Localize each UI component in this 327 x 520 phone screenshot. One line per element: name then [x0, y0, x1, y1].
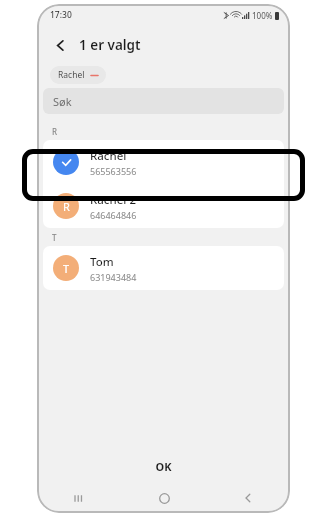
- staticText: Rachel 2: [90, 192, 136, 208]
- button[interactable]: R: [43, 184, 284, 228]
- button[interactable]: Back: [49, 34, 71, 56]
- button[interactable]: Home: [122, 483, 206, 513]
- staticText: Rachel: [90, 148, 127, 164]
- button[interactable]: Recents: [37, 483, 122, 513]
- staticText: T: [63, 261, 70, 276]
- button[interactable]: Back: [206, 483, 290, 513]
- staticText: 565563556: [90, 165, 137, 177]
- button[interactable]: Søk: [43, 88, 284, 114]
- staticText: Søk: [53, 94, 72, 109]
- staticText: 17:30: [50, 9, 72, 21]
- button[interactable]: T: [43, 246, 284, 290]
- staticText: T: [52, 232, 57, 243]
- staticText: R: [52, 126, 58, 137]
- staticText: 646464846: [90, 209, 137, 221]
- button[interactable]: Rachel: [50, 66, 106, 84]
- button[interactable]: Rachel: [43, 140, 284, 184]
- staticText: R: [63, 199, 70, 214]
- staticText: Tom: [90, 254, 114, 270]
- staticText: 631943484: [90, 271, 137, 283]
- staticText: 100%: [252, 10, 273, 21]
- button[interactable]: OK: [37, 449, 290, 483]
- staticText: 1 er valgt: [79, 36, 141, 54]
- staticText: Rachel: [58, 69, 85, 81]
- staticText: OK: [155, 459, 172, 474]
